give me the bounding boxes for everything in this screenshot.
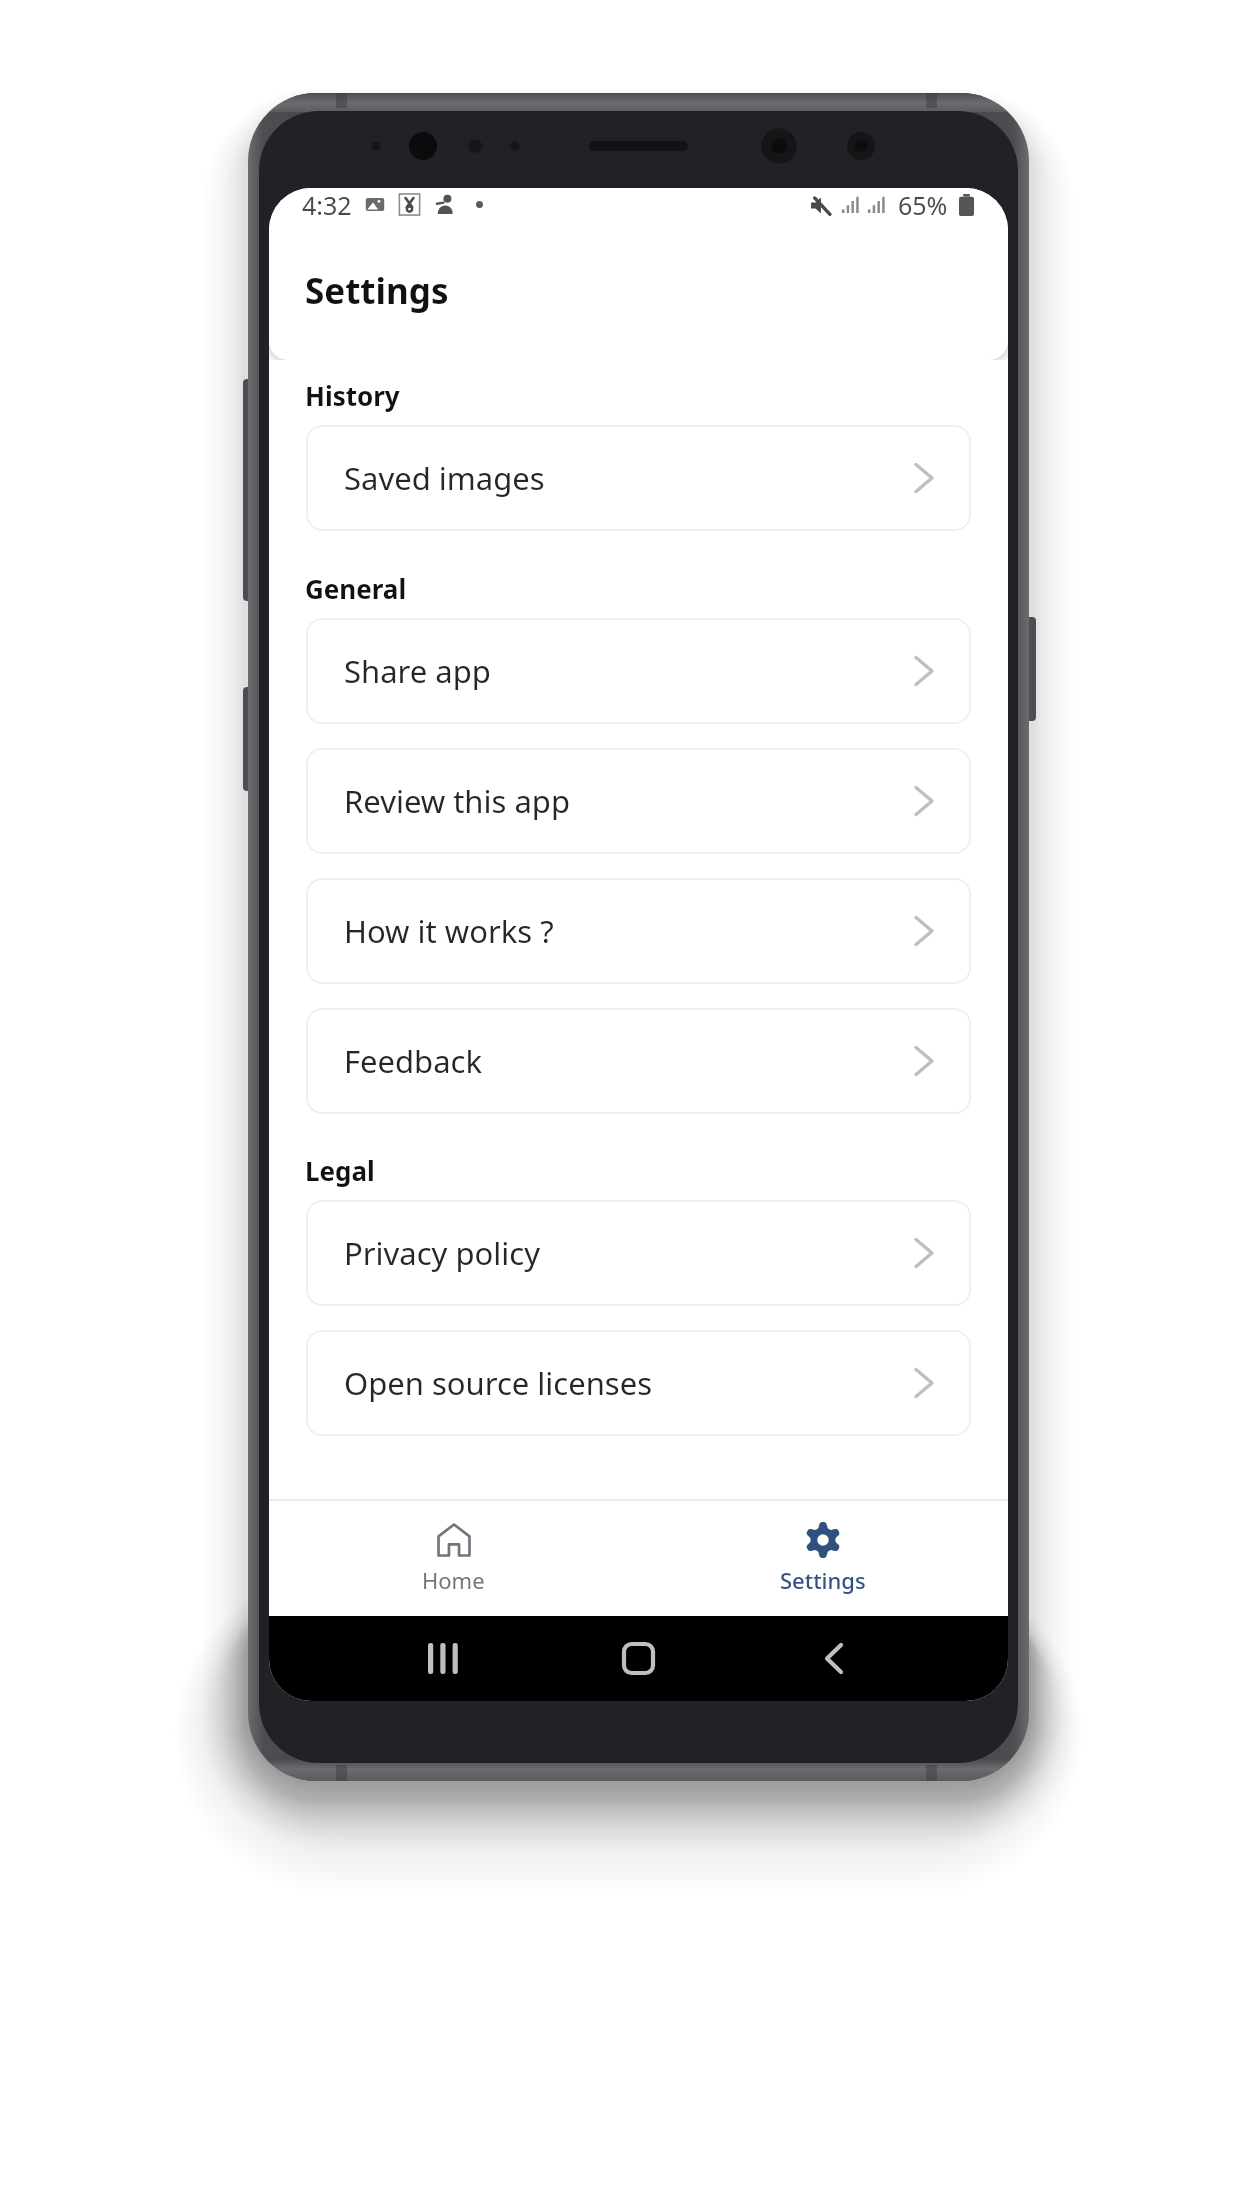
staticText: 4:32 [302, 188, 352, 220]
staticText: Review this app [344, 780, 570, 822]
staticText: 65% [898, 188, 948, 222]
staticText: Privacy policy [344, 1232, 540, 1274]
staticText: Saved images [344, 457, 545, 499]
button[interactable]: Home [540, 1616, 736, 1701]
staticText: Feedback [344, 1040, 483, 1082]
button[interactable]: Open source licenses [306, 1330, 971, 1436]
staticText: Share app [344, 650, 491, 692]
staticText: Home [422, 1565, 485, 1595]
staticText: History [305, 378, 400, 413]
button[interactable]: Home [269, 1501, 638, 1616]
button[interactable]: Feedback [306, 1008, 971, 1114]
button[interactable]: Settings [638, 1501, 1008, 1616]
button[interactable]: Saved images [306, 425, 971, 531]
button[interactable]: How it works ? [306, 878, 971, 984]
button[interactable]: Privacy policy [306, 1200, 971, 1306]
staticText: Legal [305, 1153, 375, 1188]
staticText: Open source licenses [344, 1362, 653, 1404]
button[interactable]: Share app [306, 618, 971, 724]
button[interactable]: Back [736, 1616, 932, 1701]
button[interactable]: Review this app [306, 748, 971, 854]
staticText: How it works ? [344, 910, 554, 952]
button[interactable]: Recent apps [345, 1616, 540, 1701]
staticText: Settings [780, 1565, 866, 1595]
staticText: General [305, 571, 407, 606]
staticText: Settings [305, 267, 449, 315]
